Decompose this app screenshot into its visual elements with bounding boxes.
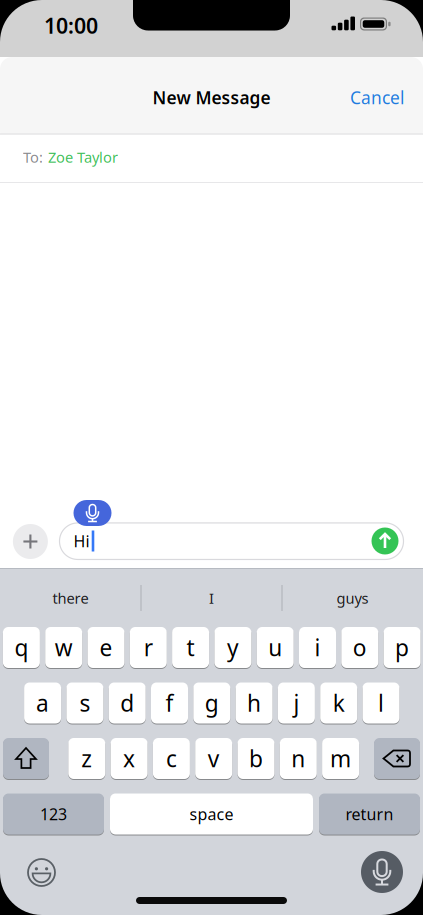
staticText: r	[144, 632, 153, 662]
staticText: b	[249, 743, 263, 773]
button[interactable]	[374, 738, 420, 779]
button[interactable]: s	[66, 682, 103, 723]
button[interactable]: f	[151, 682, 188, 723]
button[interactable]: n	[280, 738, 317, 779]
button[interactable]: y	[214, 627, 251, 668]
button[interactable]: j	[278, 682, 315, 723]
staticText: return	[345, 803, 393, 825]
button[interactable]: d	[109, 682, 146, 723]
staticText: a	[36, 688, 49, 718]
staticText: Zoe Taylor	[48, 147, 118, 167]
staticText: p	[395, 632, 409, 662]
staticText: u	[268, 632, 282, 662]
button[interactable]: b	[237, 738, 274, 779]
button[interactable]: 123	[3, 793, 104, 834]
button[interactable]: x	[111, 738, 148, 779]
button[interactable]: t	[172, 627, 209, 668]
staticText: Cancel	[350, 86, 404, 109]
button[interactable]: q	[3, 627, 40, 668]
button[interactable]	[27, 858, 56, 887]
staticText: k	[333, 688, 345, 718]
button[interactable]	[361, 851, 403, 893]
staticText: y	[227, 632, 239, 662]
button[interactable]: a	[24, 682, 61, 723]
staticText: 10:00	[44, 11, 98, 40]
button[interactable]: guys	[287, 578, 417, 618]
button[interactable]: z	[68, 738, 105, 779]
button[interactable]: To:	[23, 132, 423, 182]
staticText: I	[209, 588, 214, 608]
button[interactable]: k	[320, 682, 357, 723]
staticText: v	[208, 743, 220, 773]
staticText: c	[166, 743, 177, 773]
staticText: q	[14, 632, 28, 662]
staticText: o	[353, 632, 367, 662]
button[interactable]: v	[195, 738, 232, 779]
button[interactable]: u	[257, 627, 294, 668]
staticText: i	[314, 632, 320, 662]
button[interactable]: return	[319, 793, 420, 834]
button[interactable]: h	[236, 682, 273, 723]
staticText: d	[120, 688, 134, 718]
button[interactable]	[13, 524, 48, 559]
button[interactable]: Hi	[59, 523, 403, 559]
button[interactable]: r	[130, 627, 167, 668]
button[interactable]	[73, 500, 111, 526]
staticText: Hi	[73, 530, 89, 552]
staticText: h	[247, 688, 261, 718]
staticText: n	[291, 743, 305, 773]
staticText: there	[52, 588, 88, 608]
staticText: x	[123, 743, 135, 773]
button[interactable]: I	[146, 578, 276, 618]
staticText: space	[189, 803, 233, 825]
staticText: s	[79, 688, 90, 718]
staticText: m	[330, 743, 351, 773]
staticText: f	[165, 688, 173, 718]
button[interactable]: m	[322, 738, 359, 779]
button[interactable]: w	[45, 627, 82, 668]
button[interactable]	[371, 527, 398, 554]
button[interactable]: l	[362, 682, 399, 723]
button[interactable]: o	[341, 627, 378, 668]
button[interactable]: g	[193, 682, 230, 723]
button[interactable]: c	[153, 738, 190, 779]
staticText: j	[293, 688, 299, 718]
button[interactable]: Cancel	[350, 86, 404, 109]
button[interactable]: there	[5, 578, 135, 618]
button[interactable]	[3, 738, 49, 779]
staticText: z	[81, 743, 92, 773]
staticText: t	[187, 632, 195, 662]
staticText: g	[205, 688, 219, 718]
staticText: e	[99, 632, 112, 662]
button[interactable]: i	[299, 627, 336, 668]
button[interactable]: e	[87, 627, 124, 668]
button[interactable]: p	[384, 627, 421, 668]
button[interactable]: space	[110, 793, 313, 834]
staticText: l	[378, 688, 384, 718]
staticText: w	[55, 632, 73, 662]
staticText: To:	[23, 147, 43, 167]
staticText: guys	[336, 588, 368, 608]
staticText: New Message	[152, 86, 270, 109]
staticText: 123	[40, 803, 67, 825]
